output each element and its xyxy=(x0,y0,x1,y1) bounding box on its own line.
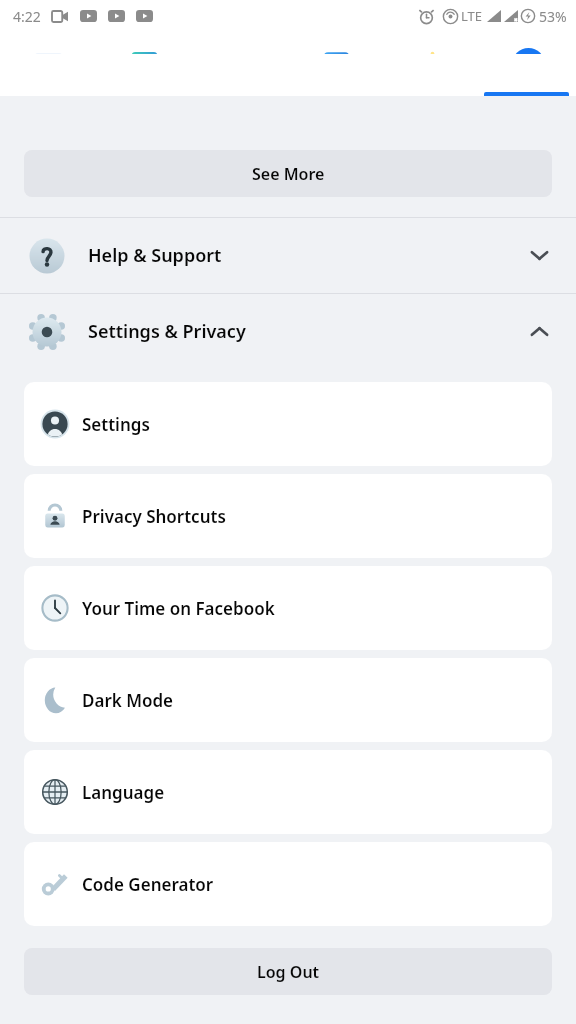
button[interactable]: Notifications xyxy=(384,32,480,96)
staticText: Settings & Privacy xyxy=(88,319,246,344)
staticText: Your Time on Facebook xyxy=(82,597,275,620)
button[interactable]: Help & Support xyxy=(0,218,576,293)
button[interactable]: Dark Mode xyxy=(24,658,552,742)
button[interactable]: Language xyxy=(24,750,552,834)
staticText: Settings xyxy=(82,413,150,436)
button[interactable]: Settings & Privacy xyxy=(0,294,576,369)
button[interactable]: Privacy Shortcuts xyxy=(24,474,552,558)
button[interactable]: Log Out xyxy=(24,948,552,995)
staticText: Code Generator xyxy=(82,873,214,896)
staticText: See More xyxy=(252,163,325,185)
button[interactable]: Your Time on Facebook xyxy=(24,566,552,650)
button[interactable]: Watch xyxy=(96,32,192,96)
staticText: Privacy Shortcuts xyxy=(82,505,226,528)
staticText: Help & Support xyxy=(88,243,222,268)
button[interactable]: Settings xyxy=(24,382,552,466)
staticText: 53% xyxy=(539,7,567,26)
staticText: Log Out xyxy=(257,961,320,983)
staticText: 4:22 xyxy=(13,7,41,26)
staticText: LTE xyxy=(461,7,483,25)
staticText: Dark Mode xyxy=(82,689,174,712)
staticText: Language xyxy=(82,781,165,804)
button[interactable]: Menu xyxy=(480,32,576,96)
button[interactable]: Code Generator xyxy=(24,842,552,926)
button[interactable]: Gaming xyxy=(288,32,384,96)
button[interactable]: See More xyxy=(24,150,552,197)
